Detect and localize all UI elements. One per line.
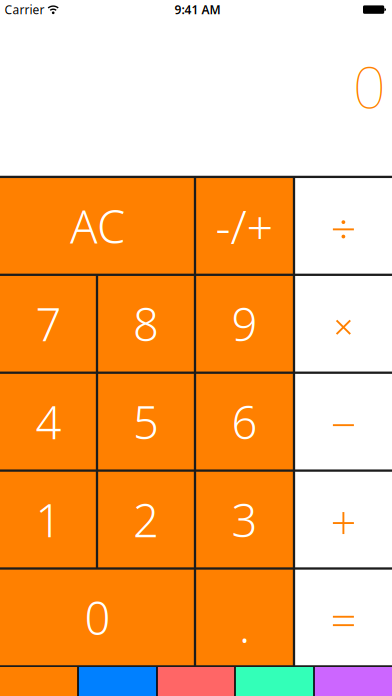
staticText: 5 xyxy=(133,391,159,452)
button[interactable]: Multiply xyxy=(294,275,392,373)
button[interactable]: 2 xyxy=(97,471,195,568)
button[interactable]: 4 xyxy=(0,373,97,471)
button[interactable]: -/+ xyxy=(195,177,294,275)
staticText: Carrier xyxy=(4,1,44,17)
button[interactable]: 3 xyxy=(195,471,294,568)
staticText: 8 xyxy=(133,294,159,354)
button[interactable]: 6 xyxy=(195,373,294,471)
button[interactable]: . xyxy=(195,568,294,666)
staticText: 6 xyxy=(231,391,257,452)
staticText: 3 xyxy=(231,489,257,550)
button[interactable]: Plus xyxy=(294,471,392,568)
staticText: AC xyxy=(70,196,125,256)
staticText: 7 xyxy=(35,294,61,354)
staticText: 9 xyxy=(231,294,257,354)
button[interactable]: 0 xyxy=(0,568,195,666)
staticText: 2 xyxy=(133,489,159,550)
button[interactable]: 8 xyxy=(97,275,195,373)
button[interactable]: 5 xyxy=(97,373,195,471)
staticText: . xyxy=(239,595,250,655)
button[interactable]: 9 xyxy=(195,275,294,373)
button[interactable]: Equals xyxy=(294,568,392,666)
staticText: 0 xyxy=(353,48,386,124)
button[interactable]: Divide xyxy=(294,177,392,275)
staticText: 0 xyxy=(84,587,110,647)
staticText: 1 xyxy=(35,489,61,550)
staticText: 9:41 AM xyxy=(174,1,220,17)
staticText: 4 xyxy=(35,391,61,452)
button[interactable]: Minus xyxy=(294,373,392,471)
button[interactable]: 7 xyxy=(0,275,97,373)
staticText: -/+ xyxy=(215,195,273,257)
button[interactable]: 1 xyxy=(0,471,97,568)
button[interactable]: AC xyxy=(0,177,195,275)
